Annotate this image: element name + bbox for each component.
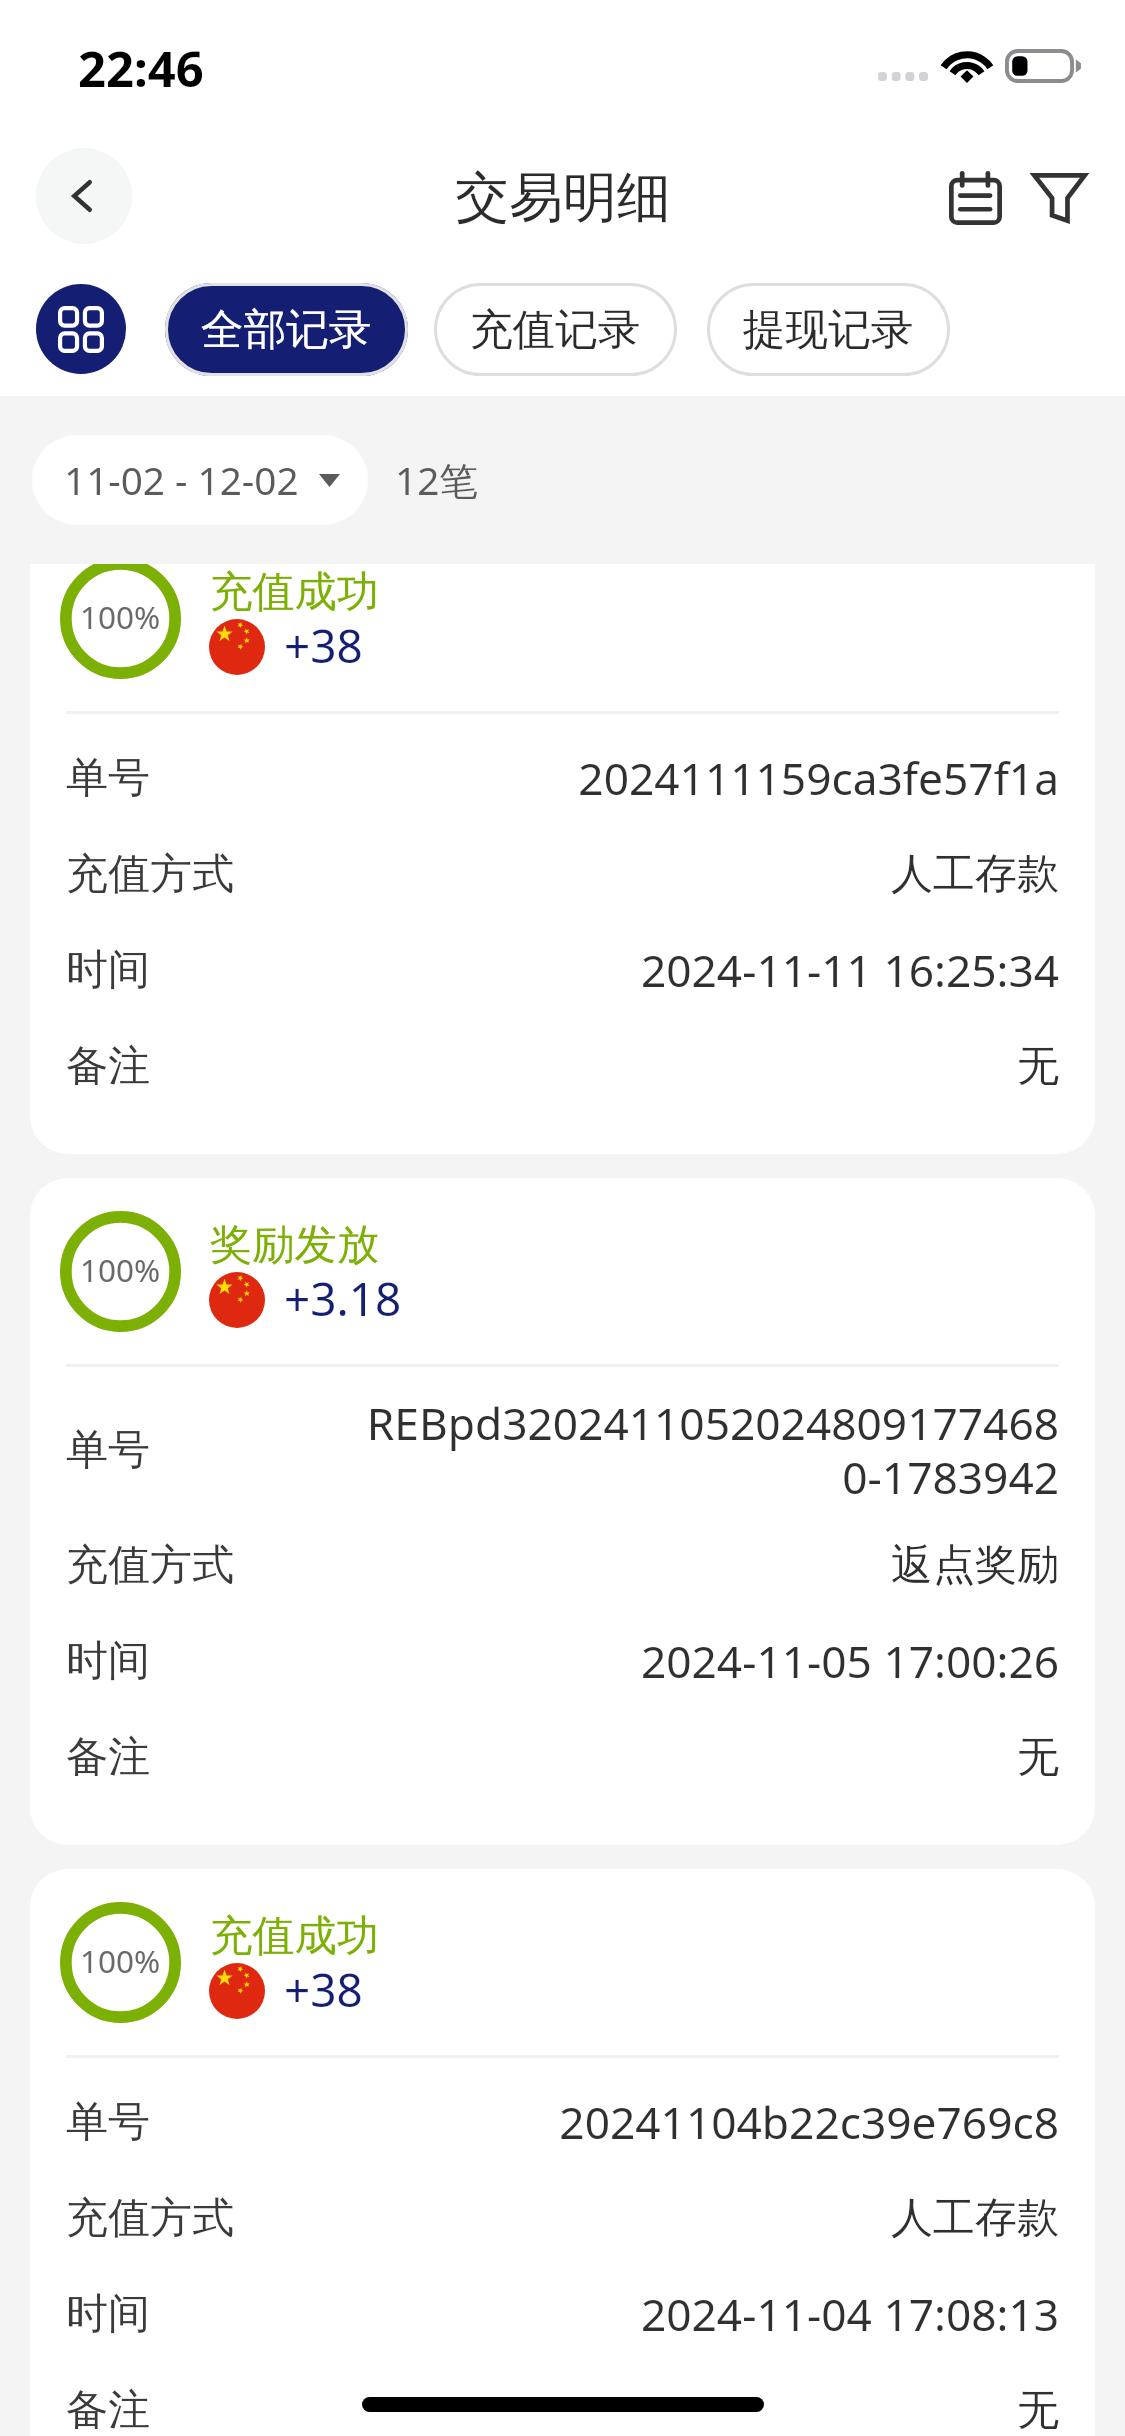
button[interactable]: 充值记录: [434, 283, 677, 376]
staticText: 100%: [80, 595, 161, 638]
staticText: 时间: [66, 1635, 360, 1688]
staticText: 2024-11-05 17:00:26: [360, 1631, 1059, 1691]
staticText: 20241104b22c39e769c8: [360, 2092, 1059, 2152]
button[interactable]: 11-02 - 12-02: [32, 435, 368, 525]
staticText: 人工存款: [360, 2192, 1059, 2245]
staticText: 2024-11-04 17:08:13: [360, 2284, 1059, 2344]
staticText: 奖励发放: [210, 1218, 380, 1271]
button[interactable]: 100%: [30, 1869, 1095, 2436]
staticText: 100%: [80, 1248, 161, 1291]
staticText: 100%: [80, 1939, 161, 1982]
button[interactable]: Filter: [1017, 138, 1101, 258]
staticText: 返点奖励: [360, 1539, 1059, 1592]
staticText: 充值成功: [210, 565, 380, 618]
staticText: 充值方式: [66, 1539, 360, 1592]
button[interactable]: Statement: [933, 138, 1017, 258]
staticText: 充值记录: [470, 303, 641, 357]
button[interactable]: 提现记录: [707, 283, 950, 376]
staticText: 单号: [66, 1424, 360, 1477]
staticText: 充值方式: [66, 848, 360, 901]
staticText: 11-02 - 12-02: [64, 454, 299, 507]
staticText: 2024111159ca3fe57f1a: [360, 748, 1059, 808]
button[interactable]: Back: [36, 148, 132, 244]
staticText: 充值方式: [66, 2192, 360, 2245]
staticText: 22:46: [78, 35, 204, 102]
staticText: 时间: [66, 944, 360, 997]
staticText: 12笔: [395, 454, 478, 507]
button[interactable]: Grid view: [36, 284, 126, 374]
staticText: 备注: [66, 1731, 360, 1784]
button[interactable]: 100%: [30, 564, 1095, 1154]
staticText: 备注: [66, 2384, 360, 2436]
staticText: 无: [360, 1040, 1059, 1093]
button[interactable]: 100%: [30, 1178, 1095, 1845]
staticText: 全部记录: [201, 303, 372, 357]
staticText: +38: [284, 614, 363, 677]
staticText: +3.18: [284, 1267, 402, 1330]
staticText: REBpd32024110520248091774680-1783942: [360, 1393, 1059, 1507]
staticText: 提现记录: [743, 303, 914, 357]
staticText: 交易明细: [455, 164, 671, 232]
staticText: +38: [284, 1958, 363, 2021]
staticText: 2024-11-11 16:25:34: [360, 940, 1059, 1000]
button[interactable]: 全部记录: [165, 283, 408, 376]
staticText: 无: [360, 2384, 1059, 2436]
staticText: 备注: [66, 1040, 360, 1093]
staticText: 单号: [66, 2096, 360, 2149]
staticText: 充值成功: [210, 1909, 380, 1962]
staticText: 单号: [66, 752, 360, 805]
staticText: 时间: [66, 2288, 360, 2341]
staticText: 无: [360, 1731, 1059, 1784]
staticText: 人工存款: [360, 848, 1059, 901]
